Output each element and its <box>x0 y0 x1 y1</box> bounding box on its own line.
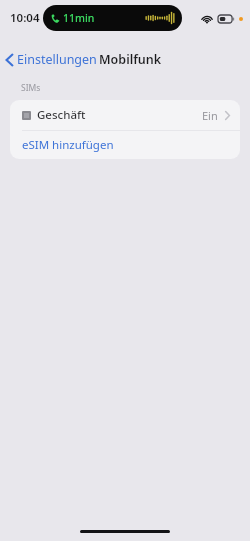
button[interactable]: Ongoing call, 11 minutes <box>43 5 182 31</box>
staticText: SIMs <box>21 82 41 94</box>
button[interactable]: eSIM hinzufügen <box>10 131 240 159</box>
staticText: Ein <box>202 108 218 123</box>
button[interactable]: Geschäft <box>10 100 240 130</box>
staticText: eSIM hinzufügen <box>22 137 114 153</box>
button[interactable]: Einstellungen <box>0 47 103 72</box>
staticText: 10:04 <box>10 10 40 26</box>
staticText: 11min <box>63 11 95 25</box>
staticText: Mobilfunk <box>99 51 162 68</box>
staticText: Geschäft <box>37 107 86 123</box>
staticText: Einstellungen <box>17 51 97 68</box>
